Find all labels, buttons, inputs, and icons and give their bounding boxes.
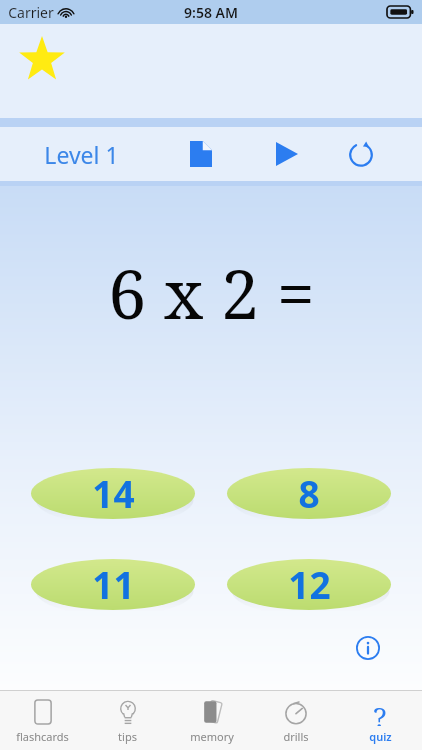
staticText: 8 (298, 468, 320, 518)
staticText: Level 1 (44, 139, 119, 170)
staticText: drills (283, 729, 309, 744)
staticText: quiz (369, 729, 392, 744)
button[interactable]: Play (276, 142, 298, 166)
button[interactable]: ? (338, 691, 422, 750)
button[interactable]: Star (18, 36, 66, 84)
button[interactable]: 8 (227, 468, 391, 521)
button[interactable]: flashcards (0, 691, 85, 750)
staticText: 9:58 AM (184, 3, 238, 22)
staticText: 12 (288, 559, 331, 609)
button[interactable]: 12 (227, 559, 391, 612)
button[interactable]: tips (85, 691, 170, 750)
button[interactable]: New page (190, 141, 212, 167)
button[interactable]: 14 (31, 468, 195, 521)
staticText: Carrier (8, 3, 54, 22)
button[interactable]: 11 (31, 559, 195, 612)
staticText: flashcards (16, 729, 69, 744)
staticText: ? (373, 698, 387, 726)
staticText: memory (190, 729, 234, 744)
staticText: 6 x 2 = (108, 246, 315, 339)
staticText: tips (118, 729, 137, 744)
button[interactable]: Level 1 (38, 133, 125, 176)
staticText: 11 (92, 559, 135, 609)
button[interactable]: Info (356, 636, 380, 660)
button[interactable]: drills (254, 691, 338, 750)
staticText: 14 (92, 468, 135, 518)
button[interactable]: Reset (348, 141, 374, 167)
button[interactable]: memory (170, 691, 254, 750)
